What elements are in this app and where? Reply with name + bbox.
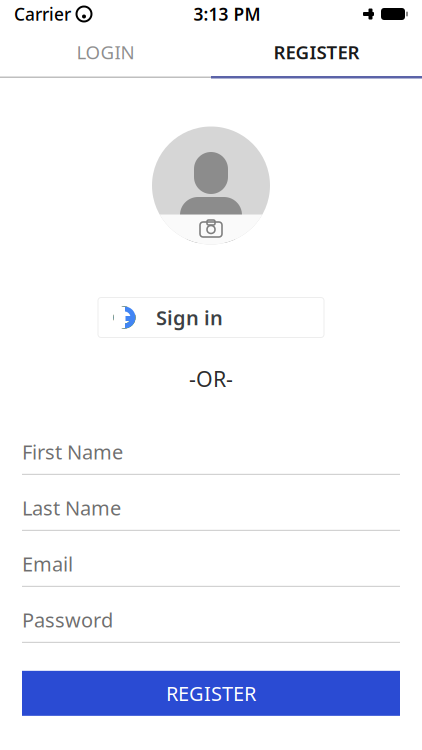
staticText: 3:13 PM: [193, 2, 260, 25]
button[interactable]: REGISTER: [211, 28, 422, 76]
staticText: REGISTER: [273, 40, 359, 64]
button[interactable]: REGISTER: [22, 671, 400, 716]
staticText: -OR-: [189, 364, 233, 393]
button[interactable]: LOGIN: [0, 28, 211, 76]
staticText: Email: [22, 551, 73, 577]
staticText: First Name: [22, 439, 123, 465]
staticText: Carrier: [14, 2, 71, 25]
staticText: REGISTER: [166, 680, 256, 707]
staticText: LOGIN: [76, 40, 134, 64]
staticText: Last Name: [22, 495, 121, 521]
staticText: Password: [22, 607, 113, 633]
button[interactable]: Sign in: [98, 297, 324, 337]
button[interactable]: Change profile photo: [152, 126, 270, 244]
staticText: Sign in: [156, 304, 223, 331]
